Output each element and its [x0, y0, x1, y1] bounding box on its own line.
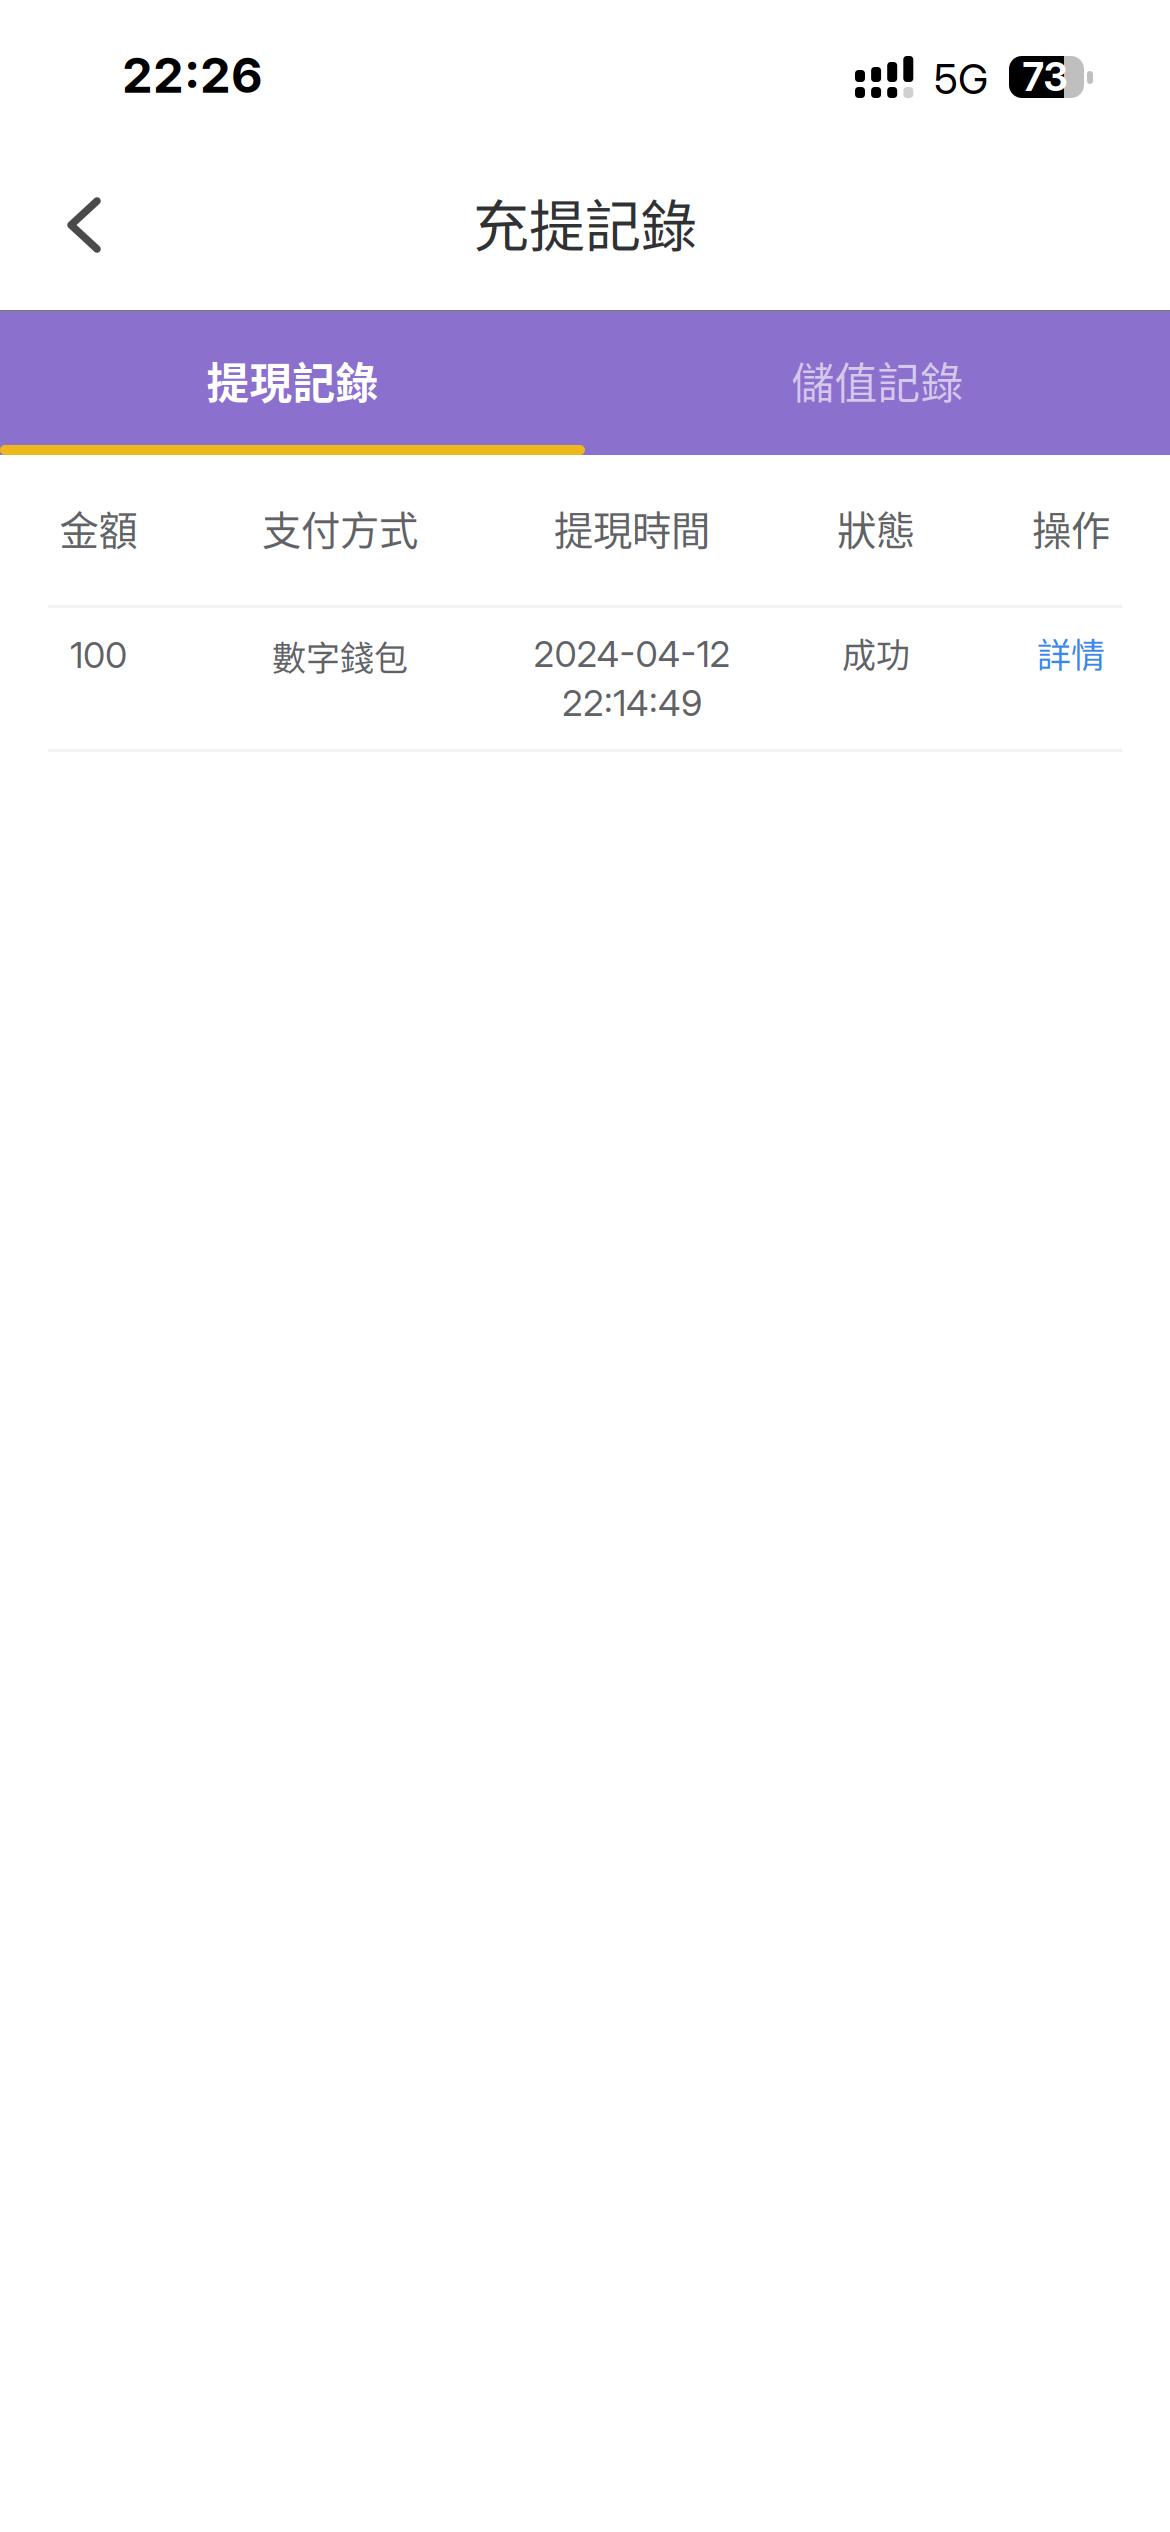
- staticText: 狀態: [837, 499, 915, 556]
- staticText: 金額: [59, 499, 137, 556]
- button[interactable]: 詳情: [985, 615, 1157, 691]
- staticText: 100: [70, 633, 127, 677]
- staticText: 成功: [842, 628, 910, 678]
- staticText: 22:14:49: [562, 681, 702, 725]
- staticText: 5G: [934, 54, 988, 104]
- staticText: 儲值記錄: [791, 350, 963, 411]
- staticText: 操作: [1032, 499, 1110, 556]
- button[interactable]: 提現記錄: [0, 311, 585, 450]
- staticText: 充提記錄: [473, 181, 697, 263]
- staticText: 22:26: [122, 46, 263, 104]
- staticText: 提現時間: [554, 499, 710, 556]
- button[interactable]: 儲值記錄: [585, 311, 1170, 450]
- button[interactable]: Back: [26, 170, 136, 280]
- staticText: 73: [1022, 54, 1067, 100]
- staticText: 詳情: [1037, 628, 1105, 678]
- staticText: 數字錢包: [272, 631, 408, 681]
- staticText: 支付方式: [262, 499, 418, 556]
- staticText: 提現記錄: [206, 350, 378, 411]
- staticText: 2024-04-12: [533, 632, 730, 676]
